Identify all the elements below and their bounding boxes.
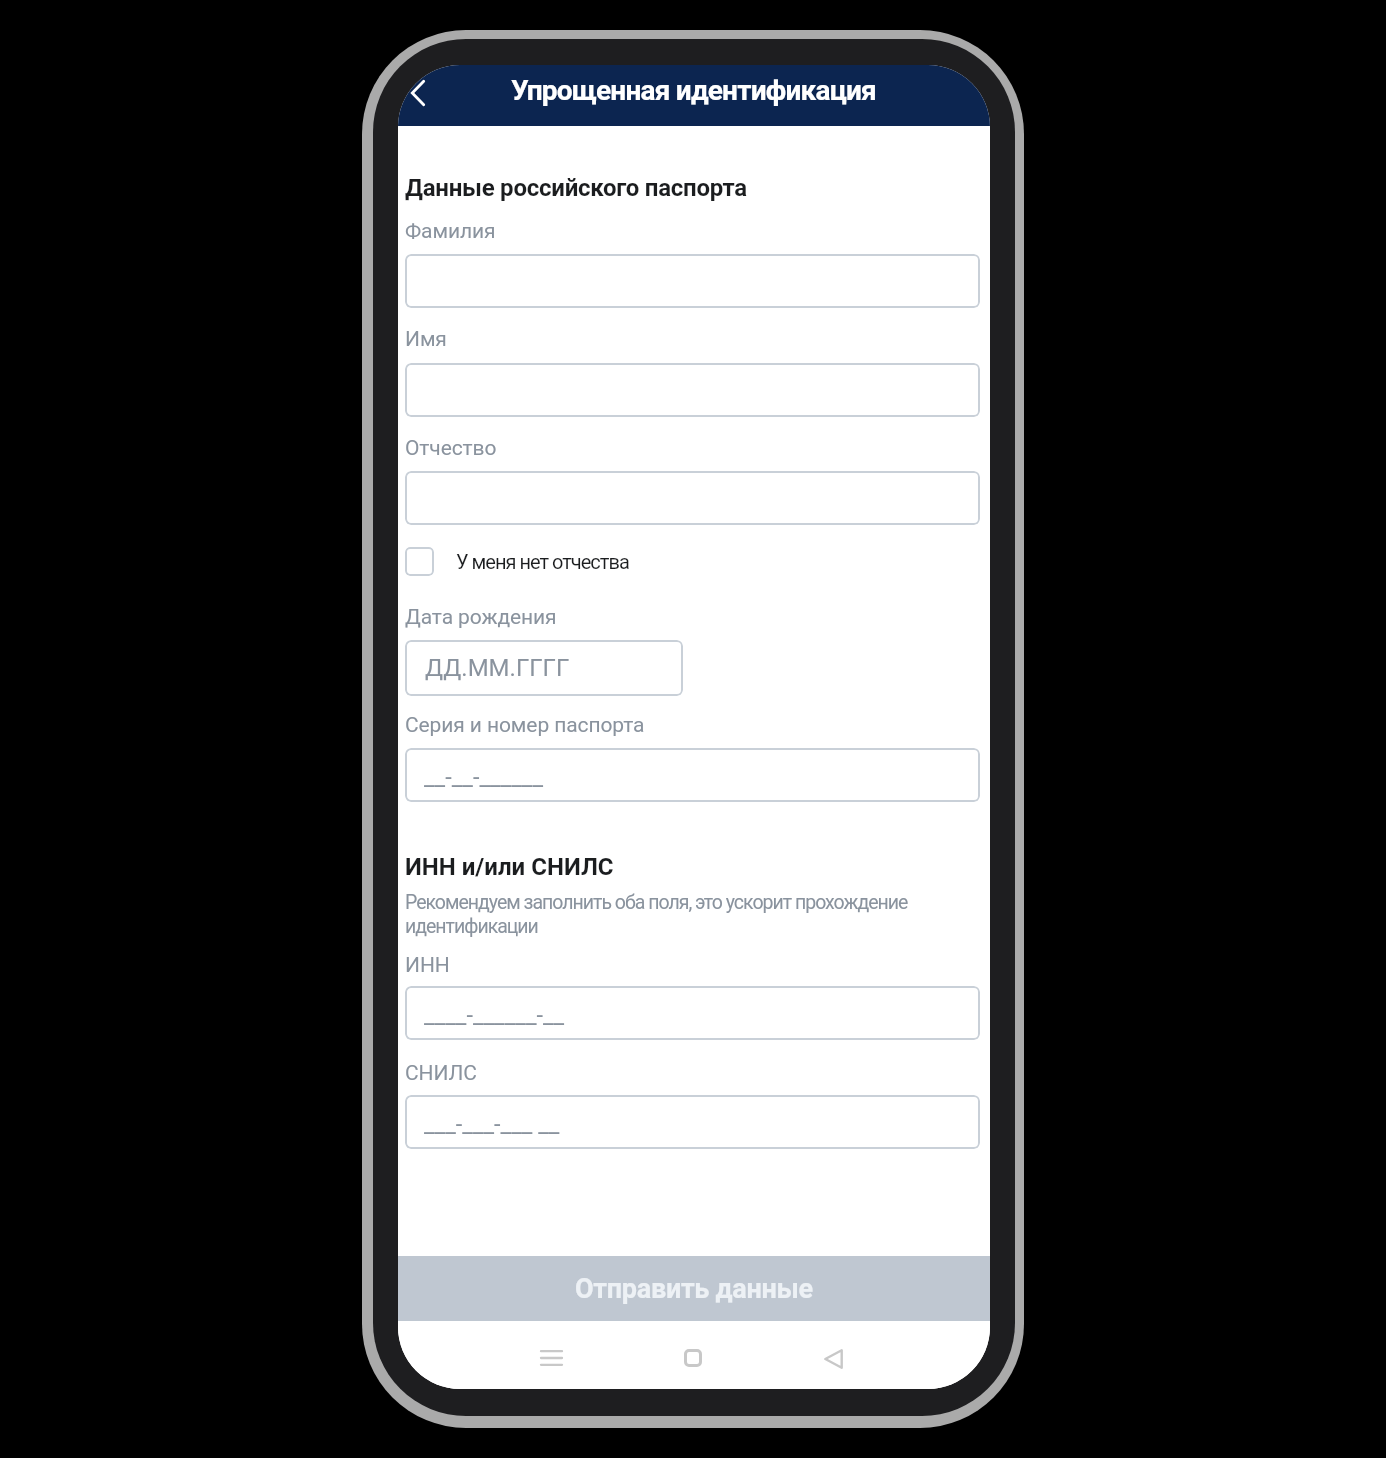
staticText: Отправить данные <box>575 1273 813 1305</box>
button[interactable]: Отчество <box>405 471 980 525</box>
button[interactable]: Дата рождения <box>405 640 683 696</box>
staticText: ____-______-__ <box>424 1001 565 1029</box>
button[interactable]: Back <box>805 1331 861 1387</box>
staticText: СНИЛС <box>405 1061 477 1086</box>
button[interactable]: Recent apps <box>523 1330 579 1386</box>
button[interactable]: СНИЛС <box>405 1095 980 1149</box>
button[interactable]: У меня нет отчества <box>405 547 667 576</box>
staticText: ИНН и/или СНИЛС <box>405 853 614 881</box>
button[interactable]: Home <box>665 1330 721 1386</box>
staticText: Упрощенная идентификация <box>511 74 911 107</box>
button[interactable]: ИНН <box>405 986 980 1040</box>
button[interactable]: Отправить данные <box>398 1256 990 1321</box>
button[interactable]: Серия и номер паспорта <box>405 748 980 802</box>
staticText: Имя <box>405 327 447 352</box>
staticText: Фамилия <box>405 219 496 244</box>
staticText: У меня нет отчества <box>456 550 629 573</box>
button[interactable]: Back <box>398 65 444 126</box>
staticText: Рекомендуем заполнить оба поля, это уско… <box>405 891 935 937</box>
staticText: Дата рождения <box>405 605 557 630</box>
staticText: ДД.ММ.ГГГГ <box>425 654 570 682</box>
staticText: Отчество <box>405 436 497 461</box>
button[interactable]: Имя <box>405 363 980 417</box>
staticText: ___-___-___ __ <box>424 1110 560 1138</box>
staticText: Серия и номер паспорта <box>405 713 645 738</box>
staticText: Данные российского паспорта <box>405 174 747 202</box>
staticText: ИНН <box>405 953 450 978</box>
button[interactable]: Фамилия <box>405 254 980 308</box>
staticText: __-__-______ <box>424 763 544 791</box>
